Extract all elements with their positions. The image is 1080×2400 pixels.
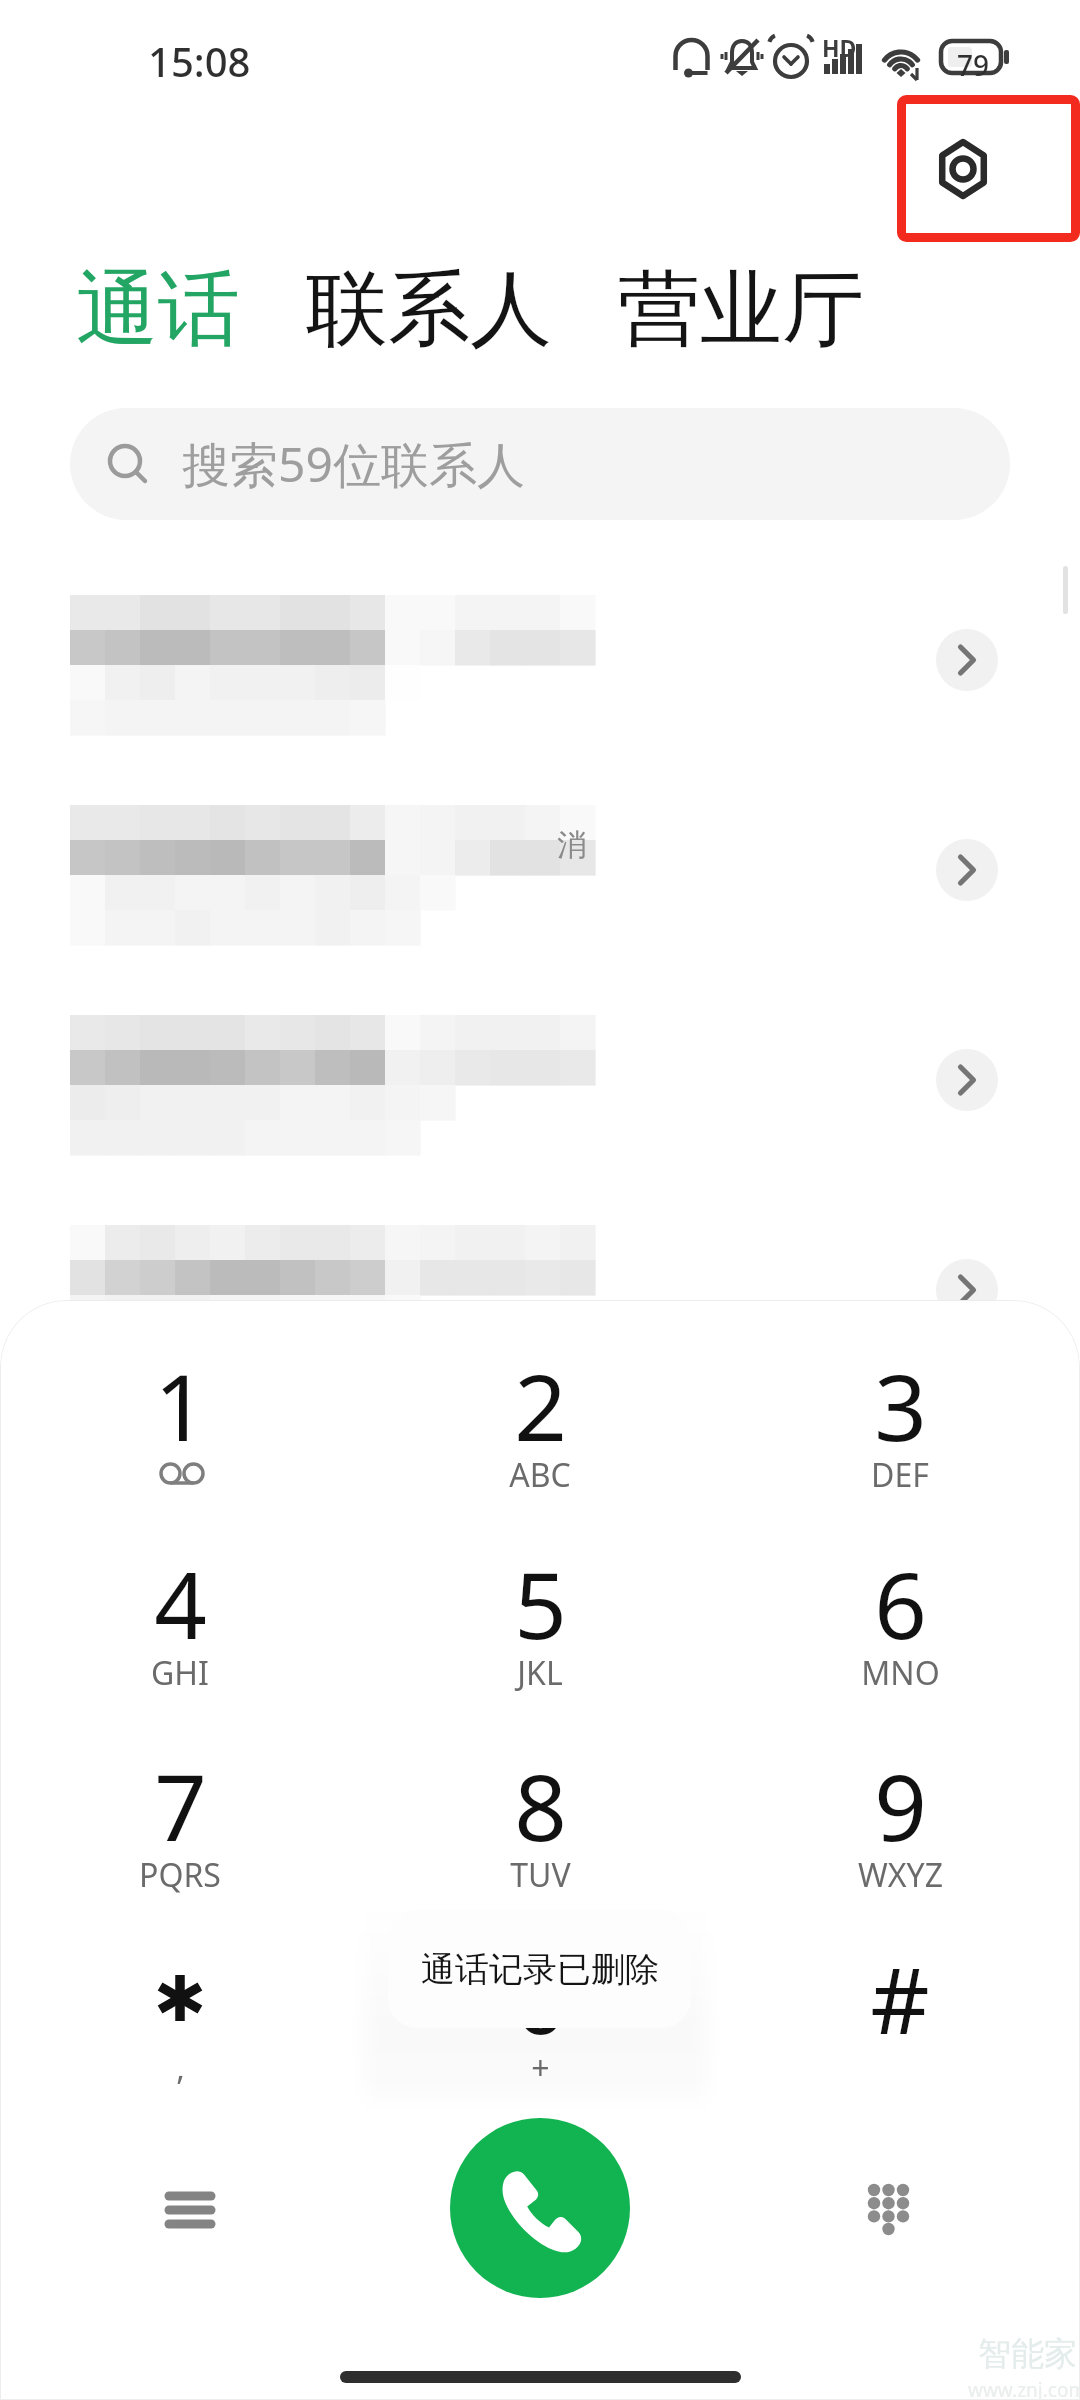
staticText: PQRS	[139, 1853, 221, 1897]
staticText: 智能家	[978, 2333, 1077, 2375]
button[interactable]: 3	[800, 1315, 1000, 1501]
button[interactable]: 0	[440, 1908, 640, 2094]
staticText: 8	[514, 1743, 567, 1868]
button[interactable]	[0, 555, 1080, 765]
staticText: 7	[154, 1743, 207, 1868]
staticText: 消	[557, 826, 587, 864]
button[interactable]: Keypad	[838, 2155, 938, 2255]
staticText: 4	[154, 1541, 207, 1666]
staticText: ,	[176, 2046, 185, 2090]
staticText: 1	[154, 1343, 207, 1468]
staticText: 通话记录已删除	[421, 1948, 659, 1991]
staticText: 79	[957, 46, 990, 84]
button[interactable]	[0, 765, 1080, 975]
button[interactable]: 搜索59位联系人	[70, 408, 1010, 520]
button[interactable]: 4	[80, 1513, 280, 1699]
button[interactable]: 2	[440, 1315, 640, 1501]
button[interactable]: Settings	[897, 95, 1078, 241]
staticText: 营业厅	[618, 258, 864, 361]
staticText: 2	[514, 1343, 567, 1468]
button[interactable]	[0, 975, 1080, 1185]
button[interactable]: 6	[800, 1513, 1000, 1699]
staticText: 15:08	[148, 34, 251, 88]
staticText: www.znj.com	[968, 2377, 1080, 2400]
staticText: JKL	[517, 1651, 563, 1695]
staticText: 0	[514, 1936, 567, 2061]
staticText: 9	[874, 1743, 927, 1868]
staticText: GHI	[151, 1651, 209, 1695]
staticText: +	[531, 2046, 550, 2090]
button[interactable]: ,	[80, 1908, 280, 2094]
button[interactable]: 7	[80, 1715, 280, 1901]
button[interactable]: 营业厅	[616, 252, 866, 367]
staticText: DEF	[871, 1453, 929, 1497]
staticText: 3	[874, 1343, 927, 1468]
staticText: 通话	[76, 258, 240, 361]
button[interactable]: Details	[936, 839, 998, 901]
staticText: WXYZ	[858, 1853, 943, 1897]
button[interactable]: 联系人	[304, 252, 554, 367]
staticText: TUV	[510, 1853, 571, 1897]
staticText: 联系人	[306, 258, 552, 361]
staticText: 5	[514, 1541, 567, 1666]
button[interactable]: #	[800, 1908, 1000, 2094]
button[interactable]: 1	[80, 1315, 280, 1501]
button[interactable]: Menu	[140, 2160, 240, 2260]
staticText: HD	[822, 32, 857, 63]
staticText: 搜索59位联系人	[182, 431, 525, 497]
button[interactable]	[0, 1185, 1080, 1395]
staticText: 6	[874, 1541, 927, 1666]
button[interactable]: 通话	[74, 252, 242, 367]
button[interactable]: Details	[936, 1259, 998, 1321]
button[interactable]: Details	[936, 629, 998, 691]
staticText: ABC	[509, 1453, 571, 1497]
button[interactable]: Call	[450, 2118, 630, 2298]
button[interactable]: 9	[800, 1715, 1000, 1901]
staticText: MNO	[861, 1651, 940, 1695]
button[interactable]: Details	[936, 1049, 998, 1111]
staticText: #	[870, 1936, 930, 2061]
button[interactable]: 8	[440, 1715, 640, 1901]
button[interactable]: 5	[440, 1513, 640, 1699]
